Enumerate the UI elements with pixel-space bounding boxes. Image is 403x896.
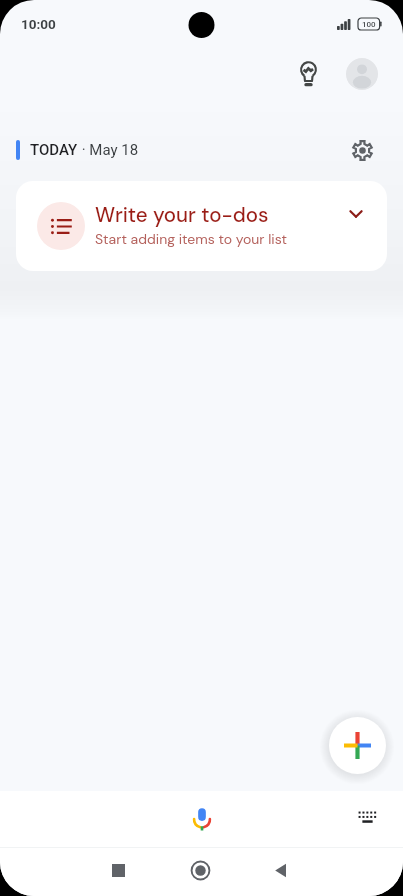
button[interactable]: Account xyxy=(346,58,378,90)
staticText: 10:00 xyxy=(21,16,56,32)
staticText: Start adding items to your list xyxy=(95,230,287,248)
button[interactable]: Voice input xyxy=(180,797,224,841)
button[interactable]: Expand xyxy=(339,197,373,231)
button[interactable]: Write your to-dos xyxy=(16,181,387,271)
button[interactable]: Settings xyxy=(344,132,380,168)
staticText: 100 xyxy=(362,20,376,29)
button[interactable]: Home xyxy=(178,848,222,892)
button[interactable]: Create xyxy=(329,717,386,774)
button[interactable]: Keyboard xyxy=(347,796,387,836)
staticText: · May 18 xyxy=(78,141,139,159)
staticText: Write your to-dos xyxy=(95,202,269,229)
button[interactable]: Tips xyxy=(288,53,329,94)
staticText: TODAY xyxy=(30,141,78,159)
button[interactable]: Recent apps xyxy=(96,848,140,892)
button[interactable]: Back xyxy=(259,848,303,892)
